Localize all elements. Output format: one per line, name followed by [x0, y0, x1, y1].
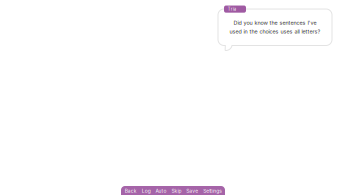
staticText: Back: [125, 188, 137, 194]
staticText: Tria: [228, 6, 236, 12]
button[interactable]: Save: [184, 186, 201, 195]
button[interactable]: Settings: [201, 186, 225, 195]
button[interactable]: Auto: [153, 186, 169, 195]
button[interactable]: Back: [122, 186, 139, 195]
staticText: Did you know the sentences I've: [233, 20, 316, 26]
staticText: Settings: [203, 188, 222, 194]
button[interactable]: Skip: [169, 186, 184, 195]
staticText: Auto: [155, 188, 166, 194]
staticText: Save: [186, 188, 198, 194]
staticText: Skip: [171, 188, 181, 194]
staticText: Log: [142, 188, 151, 194]
button[interactable]: Log: [139, 186, 153, 195]
staticText: used in the choices uses all letters?: [229, 28, 320, 35]
button[interactable]: Tria: [224, 5, 246, 13]
